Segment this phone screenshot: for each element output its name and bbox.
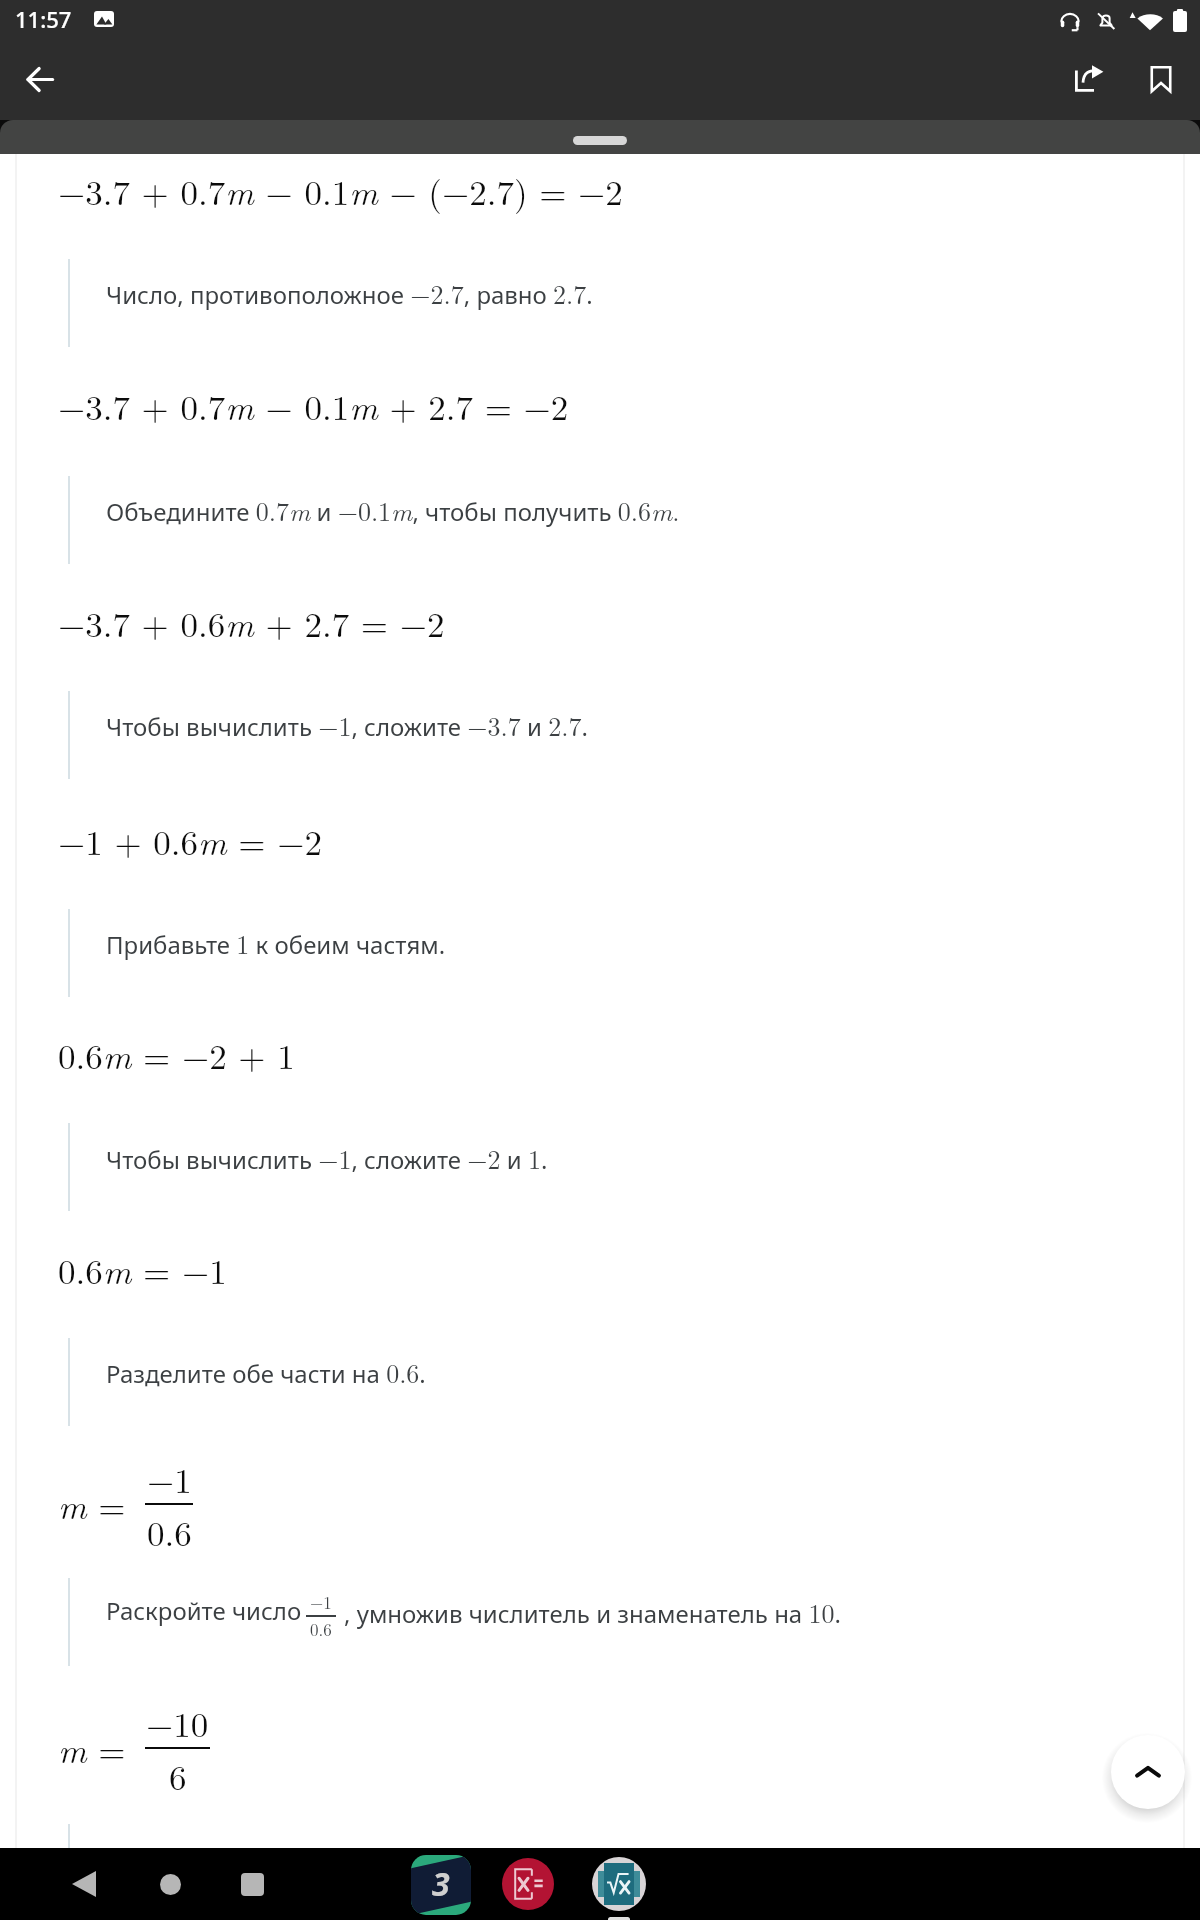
staticText: −3.7 + 0.6m + 2.7 = −2 [58,598,445,648]
button[interactable]: Recents [212,1848,292,1920]
staticText: −3.7 + 0.7m − 0.1m + 2.7 = −2 [58,381,569,431]
staticText: Раскройте число [106,1594,308,1627]
button[interactable]: Back [44,1848,124,1920]
staticText: Чтобы вычислить −1, сложите −2 и 1. [106,1140,548,1177]
staticText: Разделите обе части на 0.6. [106,1354,426,1391]
staticText: −3.7 + 0.7m − 0.1m − (−2.7) = −2 [58,166,623,216]
staticText: −1 + 0.6m = −2 [58,816,322,866]
staticText: Чтобы вычислить −1, сложите −3.7 и 2.7. [106,707,588,744]
button[interactable]: Share [1061,51,1117,107]
staticText: 0.6m = −1 [58,1245,227,1295]
staticText: 0.6m = −2 + 1 [58,1030,295,1080]
button[interactable]: Home [130,1848,210,1920]
button[interactable]: Math Solver [592,1857,646,1911]
staticText: , умножив числитель и знаменатель на 10. [344,1594,841,1631]
staticText: 3 [432,1862,450,1906]
button[interactable]: Photomath [502,1858,554,1910]
staticText: −1 [310,1590,332,1614]
staticText: m = [58,1480,126,1530]
staticText: 0.6 [310,1617,332,1641]
button[interactable]: Book 3 [411,1855,471,1915]
staticText: 6 [169,1751,187,1801]
staticText: 11:57 [15,4,72,34]
staticText: 0.6 [147,1507,192,1557]
staticText: −1 [147,1454,192,1504]
staticText: m = [58,1724,126,1774]
staticText: −10 [146,1698,209,1748]
button[interactable]: Back [12,51,68,107]
button[interactable]: Bookmark [1133,51,1189,107]
staticText: Объедините 0.7m и −0.1m, чтобы получить … [106,492,680,529]
staticText: Прибавьте 1 к обеим частям. [106,925,446,962]
button[interactable]: Scroll to top [1111,1735,1185,1809]
staticText: Число, противоположное −2.7, равно 2.7. [106,275,593,312]
